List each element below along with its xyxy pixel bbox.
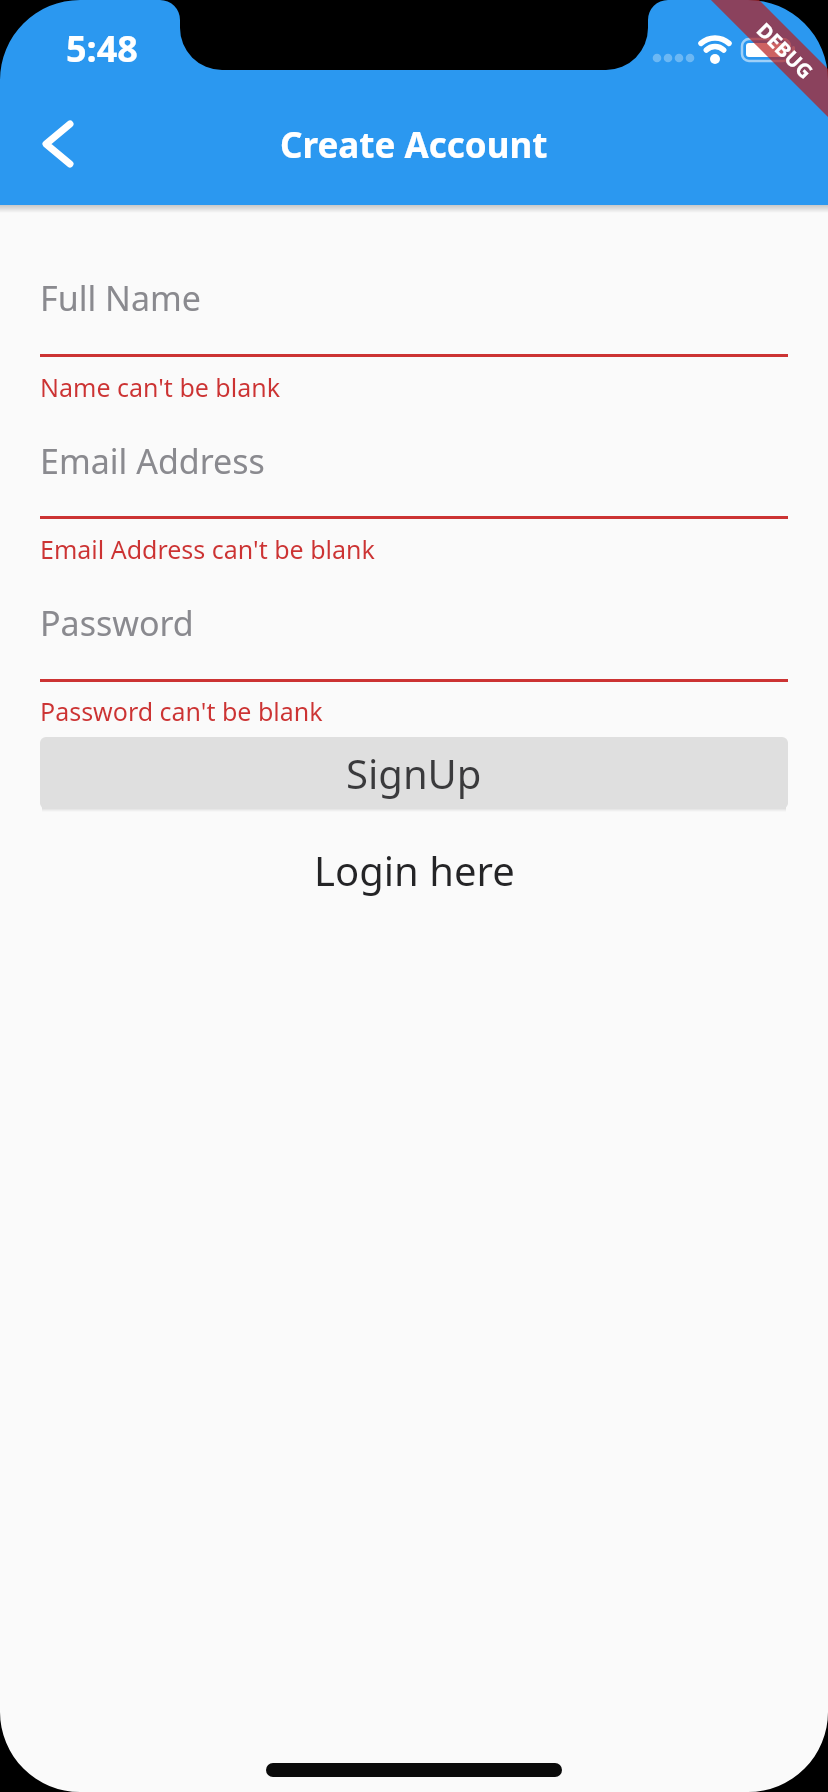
staticText: SignUp [346, 746, 482, 800]
button[interactable]: SignUp [40, 737, 788, 809]
button[interactable] [16, 104, 96, 184]
staticText: Full Name [40, 275, 201, 321]
staticText: Email Address can't be blank [40, 532, 375, 566]
staticText: 5:48 [66, 24, 138, 73]
button[interactable]: Login here [0, 830, 828, 910]
staticText: Create Account [280, 121, 548, 169]
staticText: Password can't be blank [40, 694, 323, 728]
staticText: Login here [314, 843, 515, 897]
staticText: Password [40, 600, 194, 646]
staticText: Name can't be blank [40, 370, 281, 404]
staticText: DEBUG [751, 17, 819, 85]
staticText: Email Address [40, 438, 265, 484]
